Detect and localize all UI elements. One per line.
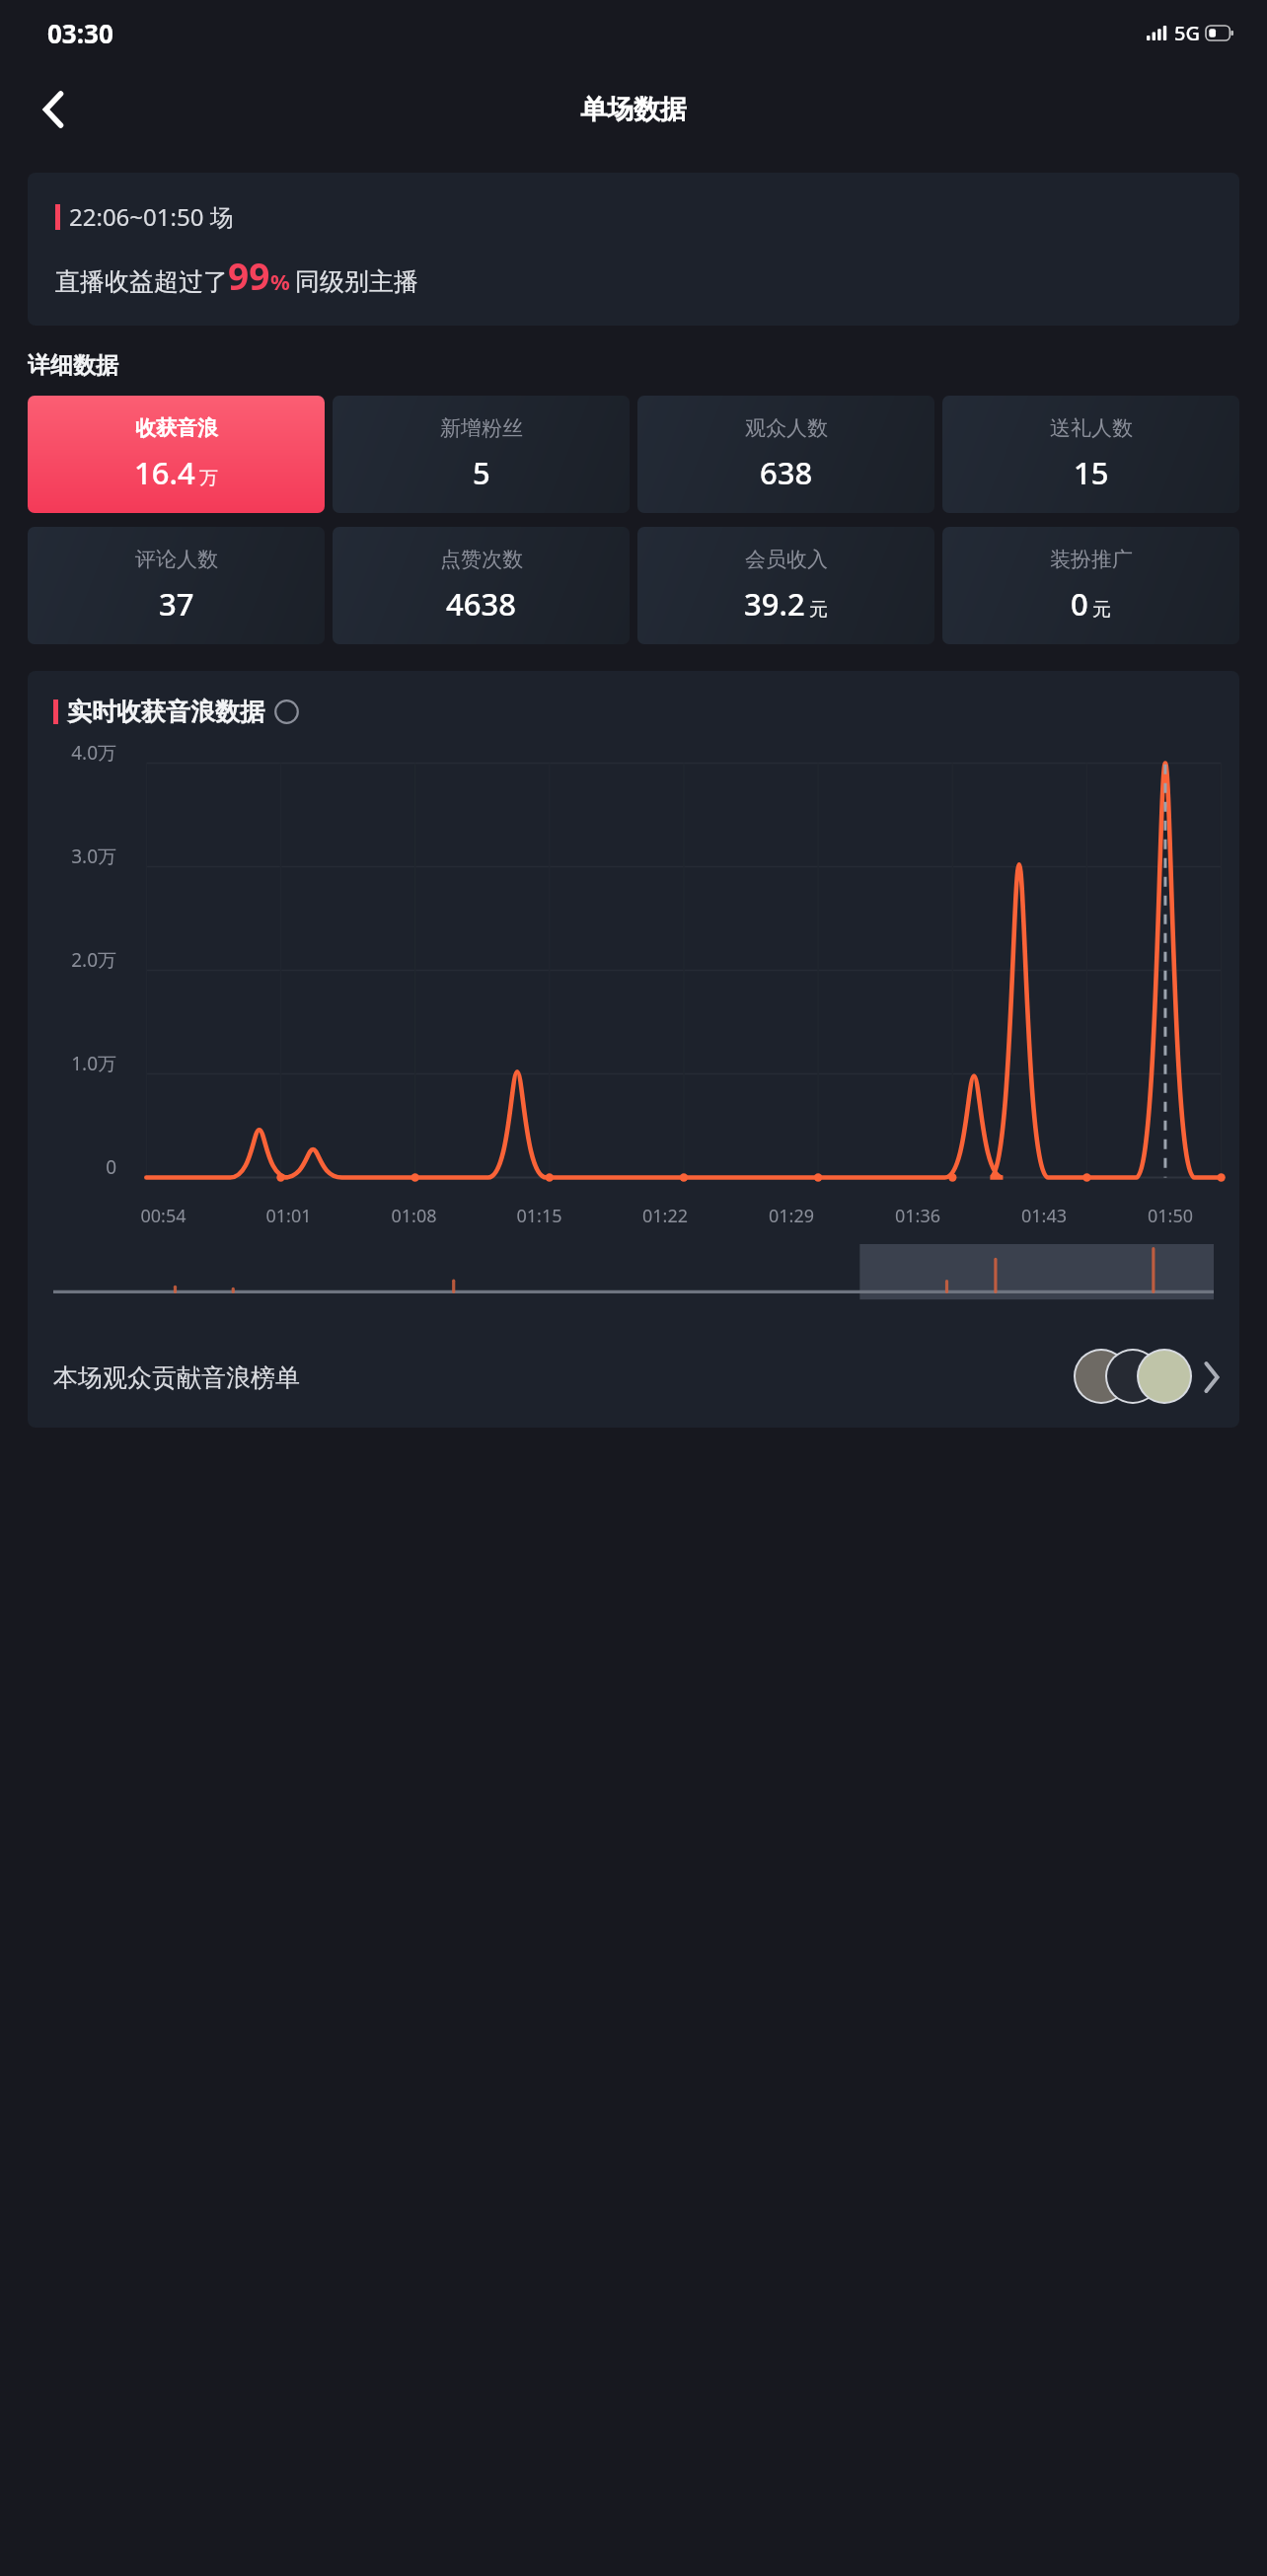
- staticText: 点赞次数: [440, 547, 523, 572]
- staticText: 本场观众贡献音浪榜单: [53, 1362, 300, 1393]
- staticText: 实时收获音浪数据: [67, 697, 264, 727]
- staticText: 元: [1092, 598, 1111, 622]
- staticText: 0: [1071, 583, 1088, 625]
- staticText: 5: [473, 452, 490, 493]
- staticText: 万: [199, 467, 218, 490]
- staticText: 新增粉丝: [440, 415, 523, 441]
- button[interactable]: 会员收入: [637, 527, 934, 644]
- button[interactable]: 送礼人数: [942, 396, 1239, 513]
- staticText: 01:15: [477, 1204, 602, 1228]
- staticText: 送礼人数: [1050, 415, 1133, 441]
- staticText: 会员收入: [745, 547, 828, 572]
- staticText: 1.0万: [36, 1051, 116, 1076]
- staticText: 详细数据: [28, 351, 118, 380]
- staticText: 01:22: [602, 1204, 728, 1228]
- button[interactable]: 收获音浪: [28, 396, 325, 513]
- staticText: 99: [228, 251, 270, 300]
- button[interactable]: 实时收获音浪数据: [53, 697, 299, 727]
- button[interactable]: 本场观众贡献音浪榜单: [28, 1345, 1239, 1428]
- staticText: %: [270, 266, 290, 296]
- staticText: 22:06~01:50 场: [69, 200, 234, 233]
- staticText: 同级别主播: [295, 266, 418, 297]
- staticText: 直播收益超过了: [55, 266, 228, 297]
- button[interactable]: 点赞次数: [333, 527, 630, 644]
- staticText: 01:43: [981, 1204, 1107, 1228]
- staticText: 01:29: [728, 1204, 855, 1228]
- staticText: 4.0万: [36, 740, 116, 766]
- staticText: 0: [36, 1154, 116, 1180]
- staticText: 15: [1074, 452, 1109, 493]
- staticText: 3.0万: [36, 844, 116, 869]
- button[interactable]: 评论人数: [28, 527, 325, 644]
- staticText: 16.4: [134, 452, 195, 493]
- staticText: 00:54: [101, 1204, 226, 1228]
- staticText: 03:30: [47, 16, 113, 50]
- staticText: 37: [159, 583, 194, 625]
- staticText: 01:50: [1107, 1204, 1233, 1228]
- other: Help: [274, 699, 299, 724]
- button[interactable]: 装扮推广: [942, 527, 1239, 644]
- staticText: 元: [809, 598, 828, 622]
- staticText: 2.0万: [36, 947, 116, 973]
- staticText: 01:36: [855, 1204, 981, 1228]
- button[interactable]: Back: [18, 74, 89, 145]
- staticText: 收获音浪: [135, 415, 218, 441]
- staticText: 装扮推广: [1050, 547, 1133, 572]
- staticText: 单场数据: [580, 93, 687, 126]
- staticText: 01:01: [226, 1204, 351, 1228]
- staticText: 观众人数: [745, 415, 828, 441]
- button[interactable]: 新增粉丝: [333, 396, 630, 513]
- staticText: 4638: [446, 583, 516, 625]
- staticText: 39.2: [744, 583, 805, 625]
- staticText: 638: [760, 452, 813, 493]
- button[interactable]: 观众人数: [637, 396, 934, 513]
- button[interactable]: 22:06~01:50 场: [28, 173, 1239, 326]
- staticText: 5G: [1174, 20, 1200, 46]
- staticText: 评论人数: [135, 547, 218, 572]
- staticText: 01:08: [351, 1204, 477, 1228]
- other: More: [1204, 1363, 1220, 1391]
